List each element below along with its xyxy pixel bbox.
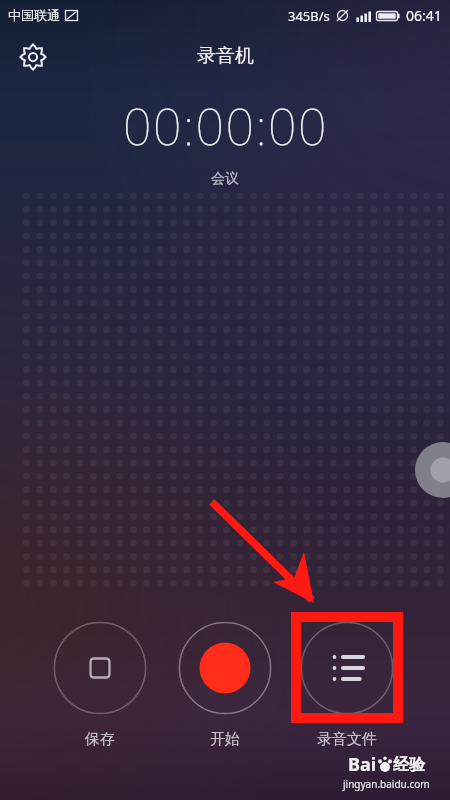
- staticText: 经验: [393, 755, 425, 775]
- staticText: 345B/s: [288, 7, 330, 25]
- staticText: 中国联通: [8, 7, 60, 23]
- staticText: Bai: [348, 752, 377, 777]
- other: Scroll handle: [0, 0, 450, 800]
- staticText: 录音文件: [292, 730, 402, 749]
- staticText: 00:00:00: [123, 92, 328, 160]
- staticText: 保存: [45, 730, 155, 749]
- staticText: 会议: [211, 170, 239, 188]
- staticText: 录音机: [197, 44, 254, 68]
- staticText: jingyan.baidu.com: [343, 777, 430, 791]
- button[interactable]: Settings: [12, 36, 54, 78]
- staticText: 开始: [170, 730, 280, 749]
- button[interactable]: Recordings: [300, 621, 394, 715]
- button[interactable]: Start recording: [178, 621, 272, 715]
- button[interactable]: Save: [53, 621, 147, 715]
- staticText: 06:41: [406, 6, 442, 25]
